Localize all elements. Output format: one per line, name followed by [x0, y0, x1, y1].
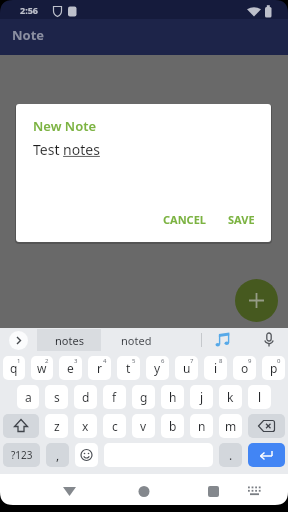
button[interactable]: SAVE — [228, 212, 255, 227]
button[interactable]: i — [204, 356, 227, 380]
staticText: New Note — [33, 117, 97, 135]
staticText: SAVE — [228, 212, 255, 227]
staticText: Note — [12, 26, 45, 44]
button[interactable]: u — [175, 356, 198, 380]
staticText: q — [10, 360, 18, 376]
staticText: m — [225, 418, 237, 434]
staticText: x — [82, 418, 89, 434]
button[interactable] — [96, 474, 192, 505]
staticText: 8 — [219, 357, 223, 365]
button[interactable]: e — [59, 356, 82, 380]
button[interactable]: g — [132, 385, 155, 409]
button[interactable] — [9, 331, 28, 350]
button[interactable]: k — [219, 385, 242, 409]
button[interactable]: q — [3, 356, 25, 380]
button[interactable]: n — [190, 414, 213, 438]
button[interactable]: o — [233, 356, 256, 380]
button[interactable] — [192, 474, 288, 505]
staticText: , — [56, 447, 60, 463]
staticText: o — [241, 360, 249, 376]
staticText: notes — [55, 333, 84, 348]
staticText: 7 — [190, 357, 194, 365]
staticText: 6 — [161, 357, 165, 365]
staticText: 2 — [45, 357, 49, 365]
button[interactable] — [262, 331, 276, 349]
button[interactable]: ?123 — [3, 443, 40, 467]
button[interactable]: . — [219, 443, 242, 467]
button[interactable]: c — [103, 414, 126, 438]
button[interactable]: t — [117, 356, 140, 380]
button[interactable] — [0, 474, 96, 505]
button[interactable]: d — [74, 385, 97, 409]
staticText: t — [126, 360, 131, 376]
staticText: Test notes — [33, 140, 100, 159]
button[interactable]: noted — [105, 329, 167, 351]
button[interactable]: w — [31, 356, 53, 380]
button[interactable]: p — [262, 356, 285, 380]
staticText: f — [112, 389, 117, 405]
button[interactable]: r — [88, 356, 111, 380]
staticText: l — [258, 389, 262, 405]
staticText: b — [169, 418, 177, 434]
staticText: p — [270, 360, 278, 376]
staticText: ?123 — [11, 448, 33, 462]
staticText: y — [154, 360, 161, 376]
staticText: 1 — [17, 357, 21, 365]
button[interactable]: f — [103, 385, 126, 409]
staticText: k — [227, 389, 234, 405]
staticText: z — [54, 418, 60, 434]
button[interactable]: b — [161, 414, 184, 438]
staticText: n — [198, 418, 206, 434]
staticText: e — [67, 360, 74, 376]
staticText: 0 — [277, 357, 281, 365]
button[interactable] — [248, 443, 285, 467]
button[interactable]: CANCEL — [163, 212, 206, 227]
button[interactable]: y — [146, 356, 169, 380]
staticText: a — [25, 389, 32, 405]
button[interactable]: j — [190, 385, 213, 409]
staticText: j — [200, 389, 204, 405]
staticText: 2:56 — [20, 4, 38, 16]
button[interactable]: s — [45, 385, 68, 409]
button[interactable] — [248, 414, 285, 438]
button[interactable]: h — [161, 385, 184, 409]
button[interactable] — [235, 279, 278, 322]
staticText: v — [140, 418, 147, 434]
button[interactable]: , — [46, 443, 69, 467]
staticText: 9 — [248, 357, 252, 365]
button[interactable]: l — [248, 385, 271, 409]
staticText: noted — [121, 333, 152, 348]
button[interactable] — [75, 443, 98, 467]
staticText: w — [37, 360, 47, 376]
staticText: g — [140, 389, 148, 405]
button[interactable] — [214, 331, 232, 349]
button[interactable]: x — [74, 414, 97, 438]
button[interactable] — [3, 414, 39, 438]
staticText: 4 — [103, 357, 107, 365]
button[interactable]: notes — [37, 329, 101, 351]
button[interactable]: a — [17, 385, 39, 409]
button[interactable]: v — [132, 414, 155, 438]
staticText: i — [214, 360, 218, 376]
staticText: s — [54, 389, 60, 405]
staticText: u — [183, 360, 191, 376]
button[interactable]: z — [45, 414, 68, 438]
staticText: r — [97, 360, 102, 376]
staticText: 3 — [74, 357, 78, 365]
staticText: 5 — [132, 357, 136, 365]
staticText: d — [82, 389, 90, 405]
staticText: h — [169, 389, 177, 405]
staticText: . — [229, 447, 233, 463]
button[interactable]: m — [219, 414, 242, 438]
staticText: CANCEL — [163, 212, 206, 227]
staticText: c — [112, 418, 118, 434]
